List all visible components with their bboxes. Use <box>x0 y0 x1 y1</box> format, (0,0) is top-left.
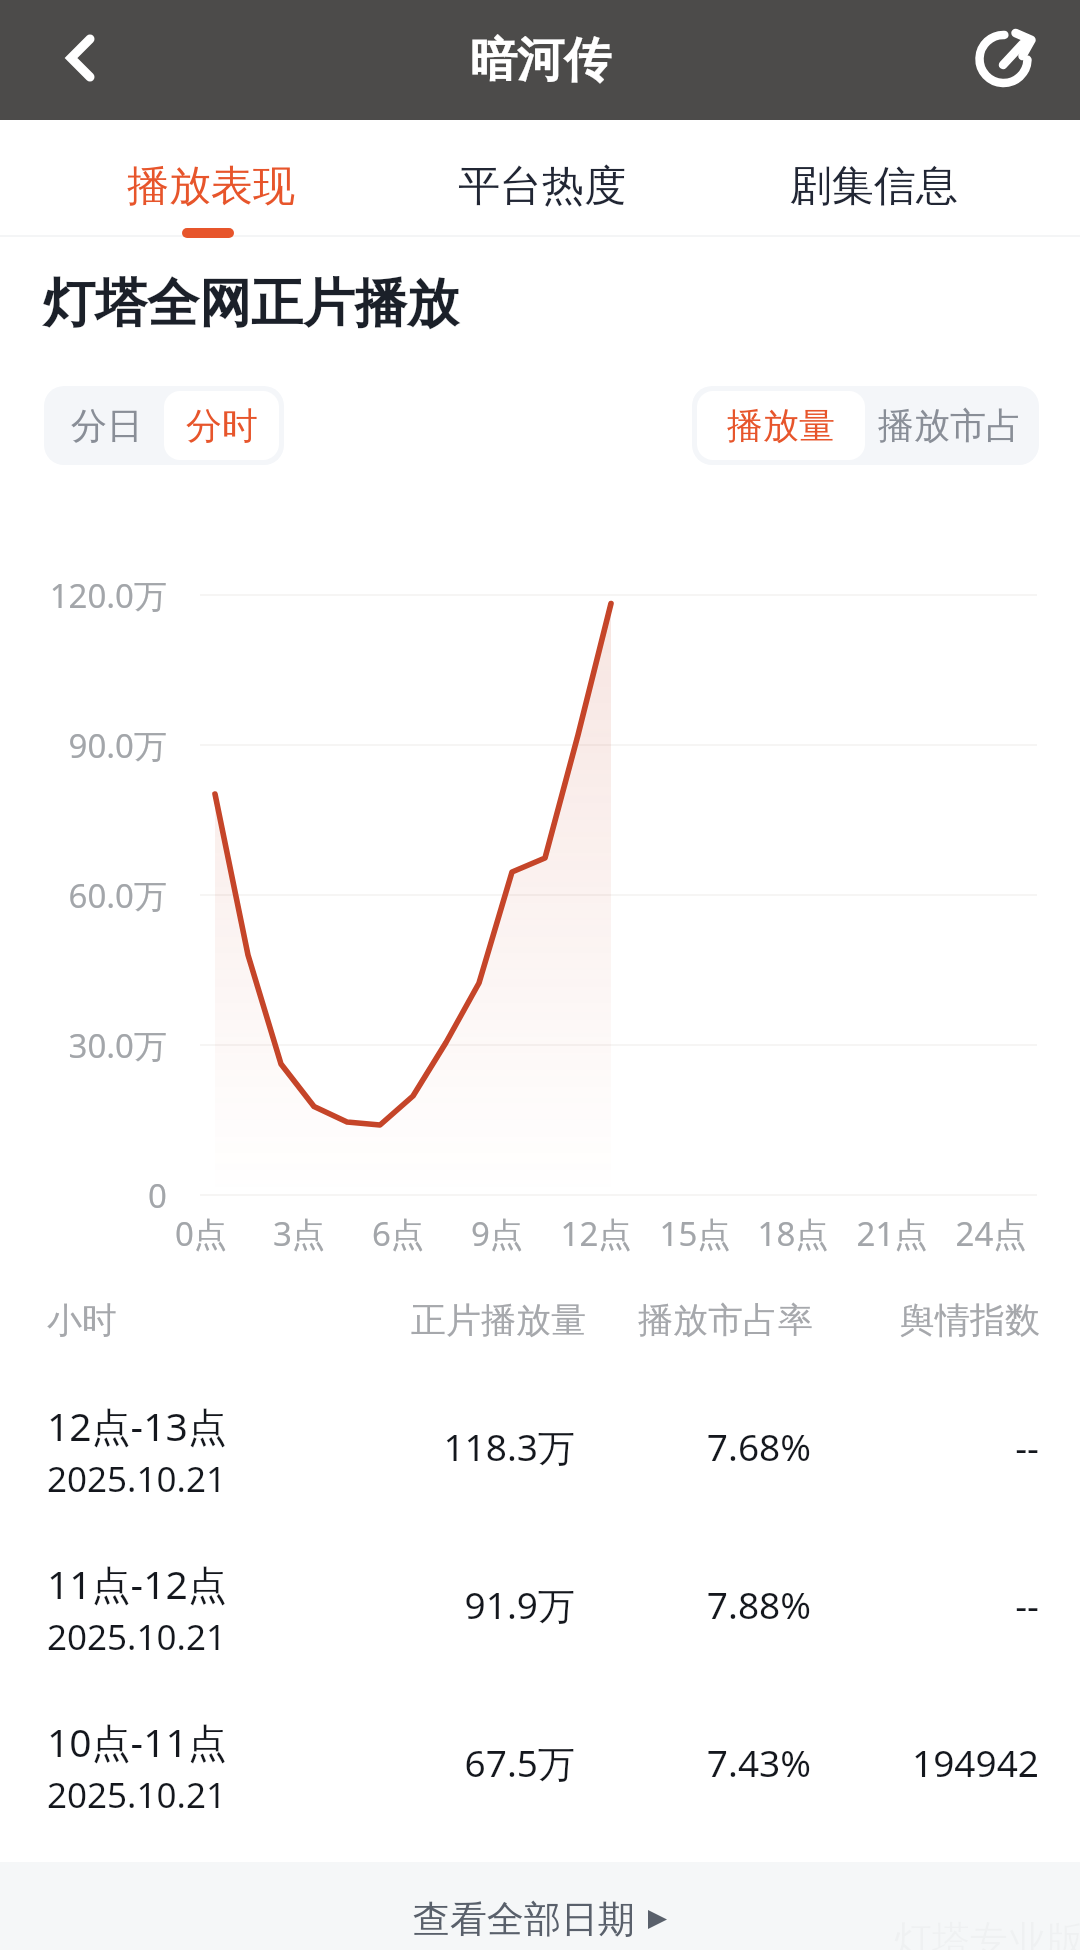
staticText: 194942 <box>639 1737 1039 1787</box>
button[interactable]: 平台热度 <box>376 124 707 244</box>
staticText: 30.0万 <box>0 1023 167 1068</box>
staticText: 9点 <box>427 1211 567 1256</box>
button[interactable]: 播放市占 <box>865 391 1034 460</box>
button[interactable]: 11点-12点 <box>0 1535 1080 1685</box>
staticText: 播放市占率 <box>413 1298 813 1342</box>
button[interactable]: Back <box>34 16 122 104</box>
button[interactable]: 分日 <box>49 391 164 460</box>
staticText: -- <box>639 1421 1039 1471</box>
staticText: 舆情指数 <box>640 1298 1040 1342</box>
staticText: 分日 <box>71 403 143 448</box>
button[interactable]: 播放量 <box>697 391 865 460</box>
staticText: 播放表现 <box>127 160 295 213</box>
staticText: 24点 <box>921 1211 1061 1256</box>
staticText: 暗河传 <box>470 31 611 90</box>
staticText: 查看全部日期 <box>413 1896 635 1943</box>
staticText: 60.0万 <box>0 873 167 918</box>
staticText: 12点 <box>526 1211 666 1256</box>
staticText: 播放市占 <box>878 403 1022 448</box>
staticText: 91.9万 <box>175 1579 575 1630</box>
staticText: 118.3万 <box>175 1421 575 1472</box>
staticText: 90.0万 <box>0 723 167 768</box>
staticText: 0点 <box>131 1211 271 1256</box>
button[interactable]: 10点-11点 <box>0 1693 1080 1843</box>
staticText: 小时 <box>47 1298 117 1342</box>
staticText: 7.68% <box>411 1421 811 1471</box>
staticText: 2025.10.21 <box>47 1613 226 1661</box>
button[interactable]: 播放表现 <box>45 124 376 244</box>
staticText: -- <box>639 1579 1039 1629</box>
staticText: 2025.10.21 <box>47 1771 226 1819</box>
button[interactable]: 灯塔专业版 <box>0 1862 1080 1950</box>
staticText: 67.5万 <box>175 1737 575 1788</box>
staticText: 平台热度 <box>458 160 626 213</box>
staticText: 18点 <box>723 1211 863 1256</box>
staticText: 分时 <box>186 403 258 448</box>
staticText: 3点 <box>229 1211 369 1256</box>
staticText: 6点 <box>328 1211 468 1256</box>
button[interactable]: Refresh <box>959 15 1049 105</box>
staticText: 灯塔全网正片播放 <box>43 271 459 337</box>
staticText: 7.43% <box>411 1737 811 1787</box>
staticText: 15点 <box>625 1211 765 1256</box>
staticText: 120.0万 <box>0 573 167 618</box>
staticText: 7.88% <box>411 1579 811 1629</box>
staticText: 21点 <box>822 1211 962 1256</box>
staticText: 播放量 <box>727 403 835 448</box>
button[interactable]: 分时 <box>164 391 279 460</box>
staticText: 11点-12点 <box>47 1557 227 1610</box>
staticText: 12点-13点 <box>47 1399 227 1452</box>
staticText: 0 <box>0 1173 167 1218</box>
staticText: 剧集信息 <box>790 160 958 213</box>
button[interactable]: 剧集信息 <box>708 124 1039 244</box>
button[interactable]: 12点-13点 <box>0 1377 1080 1527</box>
staticText: 正片播放量 <box>186 1298 586 1342</box>
staticText: 2025.10.21 <box>47 1455 226 1503</box>
staticText: 10点-11点 <box>47 1715 227 1768</box>
